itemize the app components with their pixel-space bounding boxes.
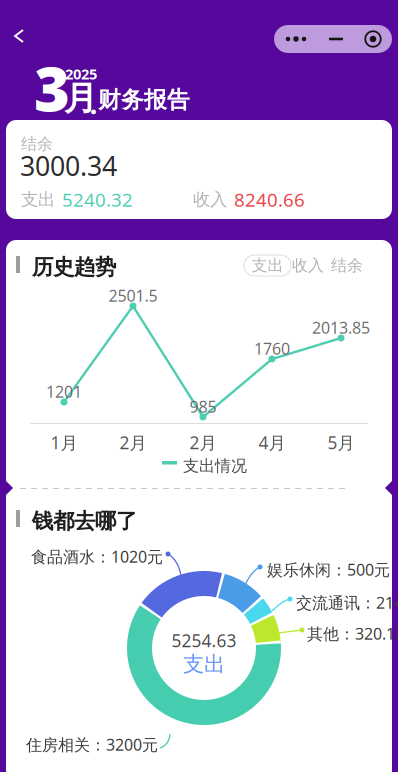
button[interactable]: More — [274, 25, 318, 53]
staticText: 财务报告 — [98, 86, 190, 114]
staticText: . — [90, 89, 97, 121]
button[interactable]: Back — [3, 18, 37, 56]
staticText: 985 — [189, 396, 216, 417]
staticText: 食品酒水：1020元 — [31, 546, 163, 567]
staticText: 支出 — [183, 651, 225, 677]
staticText: 1月 — [50, 431, 77, 454]
staticText: 支出情况 — [183, 456, 247, 476]
staticText: 8240.66 — [234, 187, 305, 212]
staticText: 2月 — [119, 431, 146, 454]
staticText: 住房相关：3200元 — [26, 734, 158, 755]
staticText: 3 — [34, 47, 70, 128]
button[interactable]: 支出 — [244, 255, 291, 276]
staticText: 历史趋势 — [32, 254, 116, 280]
staticText: 结余 — [21, 134, 53, 154]
staticText: 5240.32 — [62, 187, 133, 212]
staticText: 2025 — [65, 64, 97, 83]
staticText: 1760 — [254, 338, 290, 359]
button[interactable]: 收入 — [290, 255, 326, 276]
staticText: 2501.5 — [108, 285, 157, 306]
staticText: 收入 — [193, 189, 227, 210]
staticText: 娱乐休闲：500元 — [267, 559, 390, 580]
staticText: 3000.34 — [20, 148, 117, 183]
staticText: 5254.63 — [171, 629, 236, 652]
staticText: 月 — [64, 78, 97, 119]
staticText: 支出 — [251, 256, 283, 275]
staticText: 交流通讯：214 — [296, 592, 398, 613]
staticText: 1201 — [46, 381, 82, 402]
staticText: 支出 — [21, 189, 55, 210]
staticText: 其他：320.13 — [307, 623, 398, 644]
button[interactable]: Close — [354, 25, 392, 53]
staticText: 4月 — [258, 431, 285, 454]
staticText: 2月 — [189, 431, 216, 454]
staticText: 结余 — [331, 256, 363, 275]
staticText: 收入 — [292, 256, 324, 275]
button[interactable]: Minimize — [318, 25, 354, 53]
button[interactable]: 结余 — [329, 255, 365, 276]
staticText: 5月 — [327, 431, 354, 454]
staticText: 2013.85 — [312, 317, 370, 338]
staticText: 钱都去哪了 — [32, 508, 137, 534]
